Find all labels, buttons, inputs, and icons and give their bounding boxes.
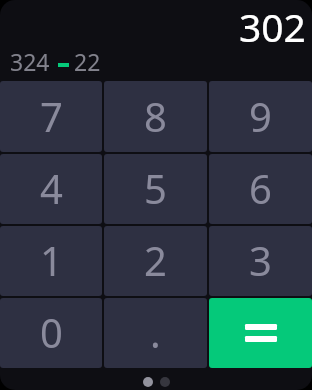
staticText: 6 bbox=[249, 161, 272, 215]
button[interactable]: 7 bbox=[0, 81, 102, 152]
button[interactable]: 2 bbox=[104, 226, 207, 296]
staticText: 0 bbox=[40, 305, 63, 359]
staticText: . bbox=[150, 305, 161, 359]
staticText: 1 bbox=[40, 233, 63, 287]
button[interactable]: 3 bbox=[209, 226, 312, 296]
staticText: 324 bbox=[10, 46, 50, 77]
staticText: 22 bbox=[74, 46, 101, 77]
button[interactable]: 9 bbox=[209, 81, 312, 152]
staticText: 7 bbox=[40, 89, 63, 143]
button[interactable]: Page 1 bbox=[143, 377, 153, 387]
button[interactable]: 6 bbox=[209, 154, 312, 224]
staticText: 3 bbox=[249, 233, 272, 287]
staticText: 9 bbox=[249, 89, 272, 143]
button[interactable]: Decimal point bbox=[104, 298, 207, 368]
staticText: 8 bbox=[144, 89, 167, 143]
button[interactable]: 8 bbox=[104, 81, 207, 152]
button[interactable]: Page 2 bbox=[160, 377, 170, 387]
button[interactable]: 5 bbox=[104, 154, 207, 224]
staticText: 302 bbox=[239, 0, 306, 53]
staticText: 2 bbox=[144, 233, 167, 287]
button[interactable]: 4 bbox=[0, 154, 102, 224]
button[interactable]: 0 bbox=[0, 298, 102, 368]
button[interactable]: Equals bbox=[209, 298, 312, 368]
staticText: 4 bbox=[40, 161, 63, 215]
button[interactable]: 1 bbox=[0, 226, 102, 296]
staticText: 5 bbox=[144, 161, 167, 215]
